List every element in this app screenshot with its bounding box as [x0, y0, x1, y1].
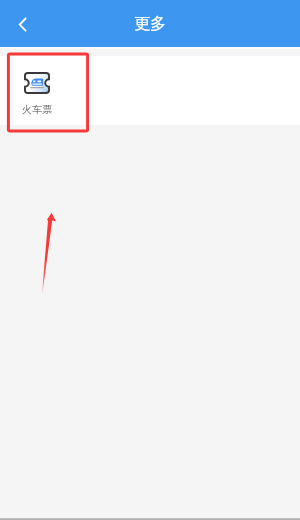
button[interactable]: 火车票	[0, 56, 74, 125]
staticText: 更多	[134, 14, 166, 34]
staticText: 火车票	[22, 103, 52, 116]
button[interactable]: Back	[0, 0, 44, 47]
